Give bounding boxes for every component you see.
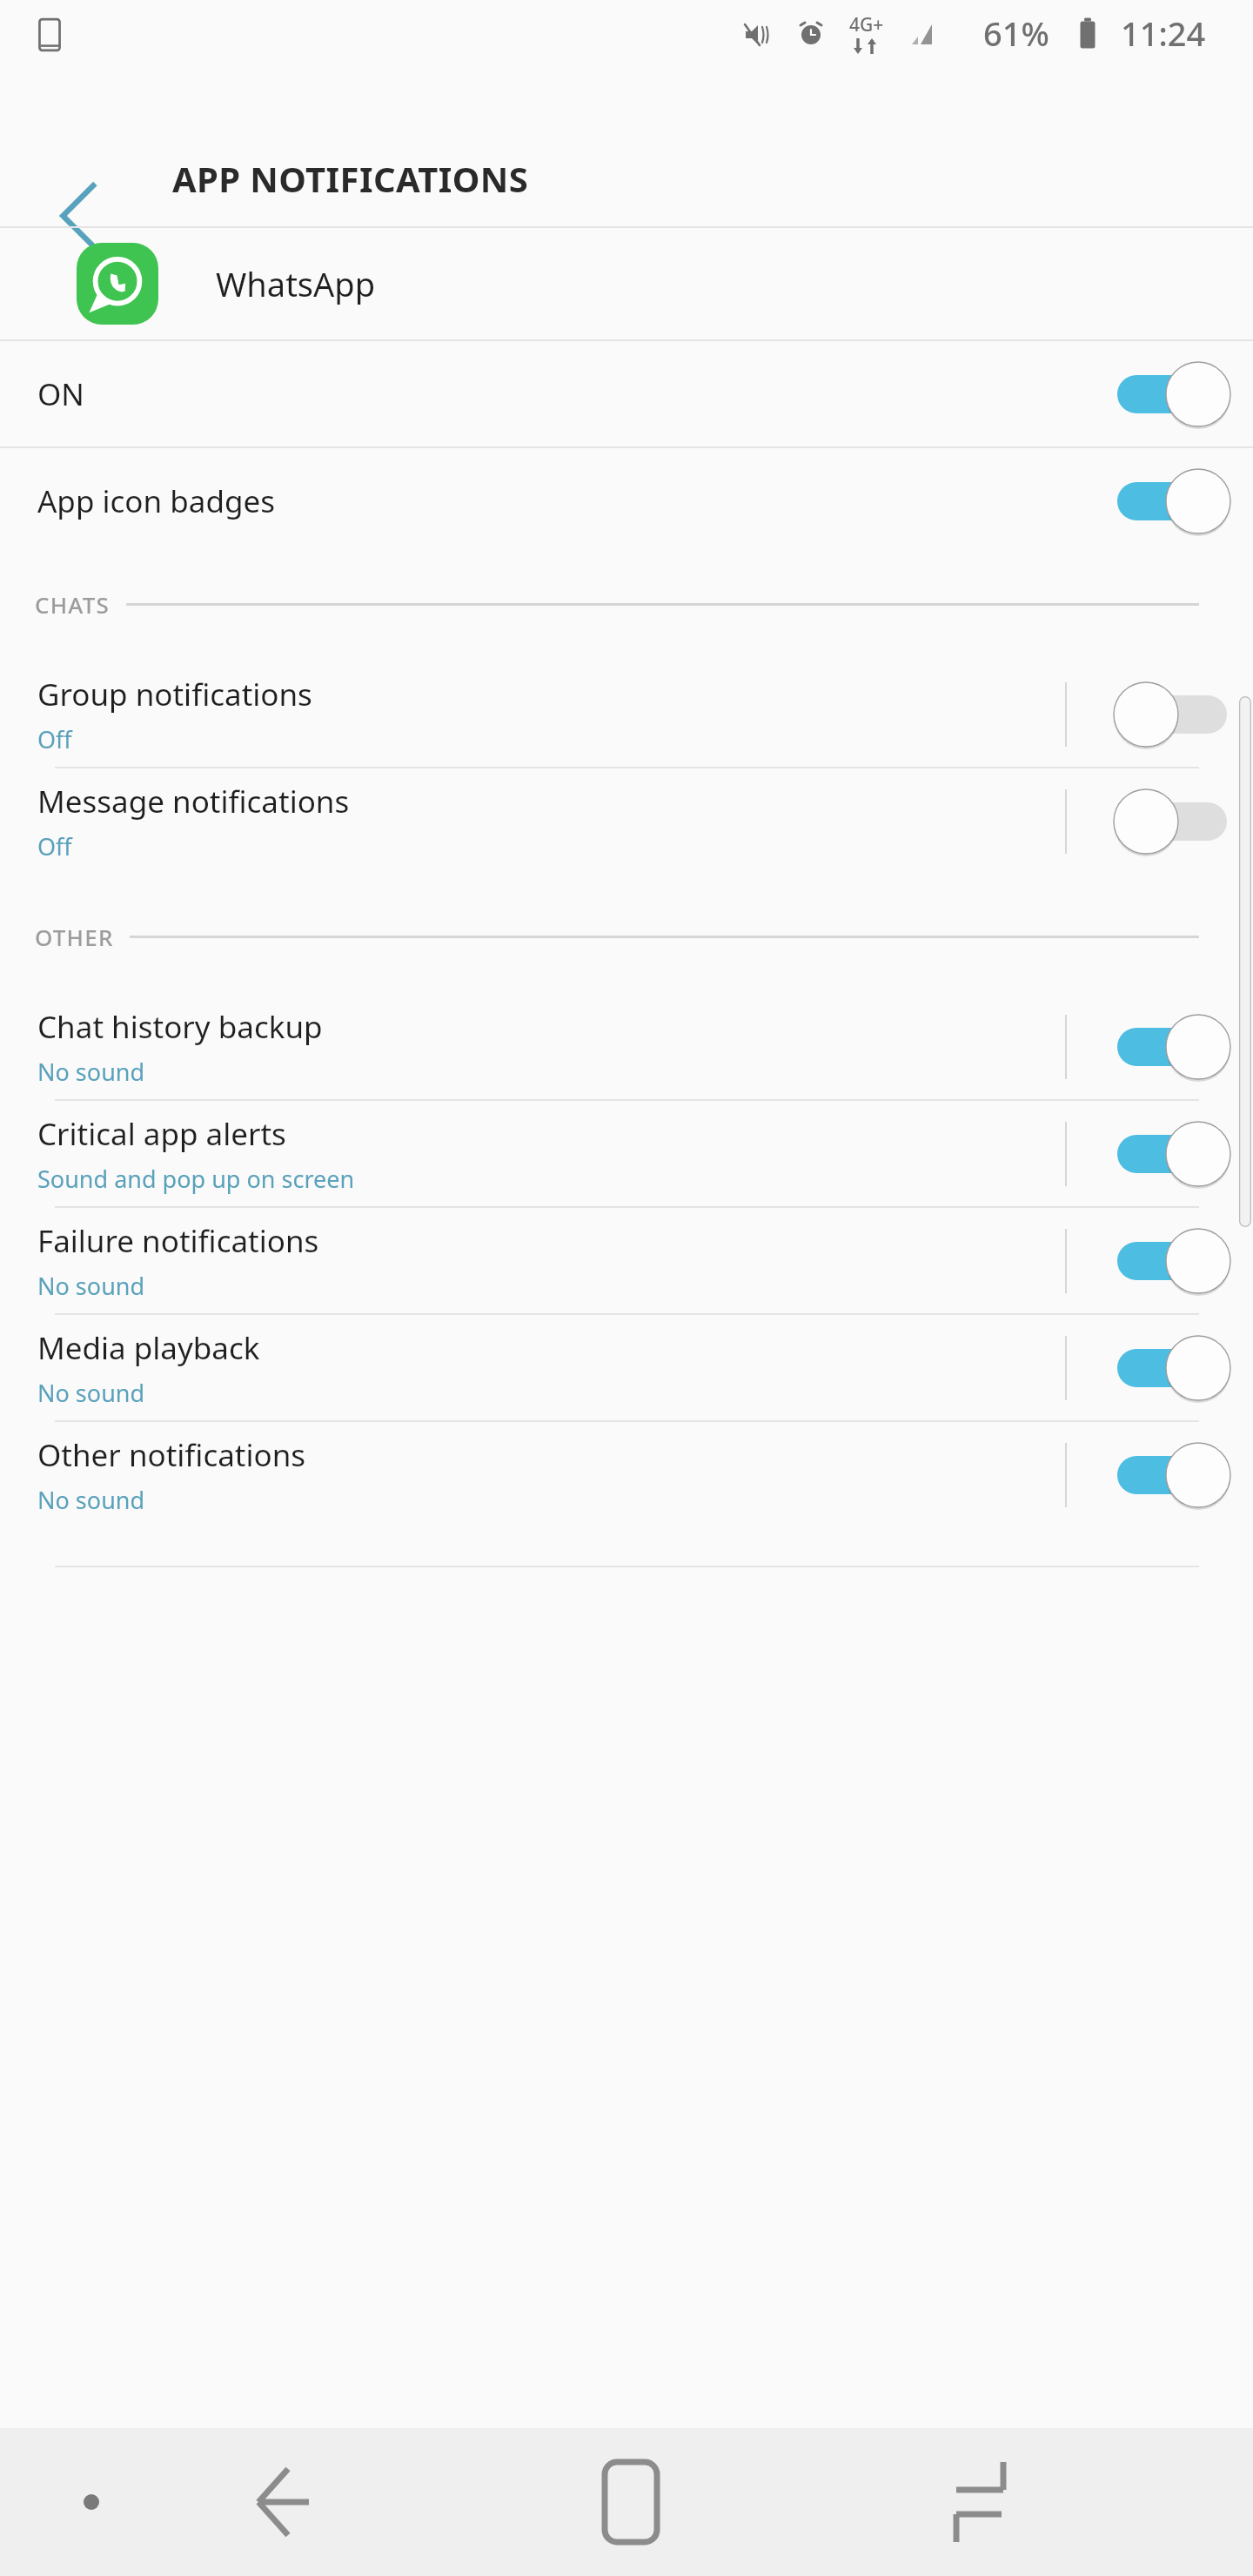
staticText: Other notifications [37,1434,306,1476]
button[interactable]: App icon badges [0,448,1253,553]
button[interactable]: Home [574,2428,687,2576]
button[interactable]: Other notifications [0,1422,1253,1527]
button[interactable]: Back [26,165,127,266]
button[interactable]: Recent apps [922,2428,1035,2576]
button[interactable]: Media playback [0,1315,1253,1420]
staticText: Failure notifications [37,1220,319,1262]
button[interactable]: Message notifications [0,768,1253,874]
staticText: ON [37,373,84,415]
button[interactable]: Back [226,2428,339,2576]
button[interactable]: Chat history backup [0,994,1253,1099]
staticText: No sound [37,1377,145,1409]
button[interactable]: Menu [52,2428,131,2576]
button[interactable]: Group notifications off [1107,675,1237,754]
button[interactable]: Other notifications on [1107,1436,1237,1514]
staticText: No sound [37,1484,145,1516]
button[interactable]: Failure notifications on [1107,1222,1237,1300]
staticText: Off [37,723,72,755]
staticText: No sound [37,1270,145,1302]
staticText: Chat history backup [37,1006,323,1048]
staticText: No sound [37,1056,145,1088]
button[interactable]: Media playback on [1107,1329,1237,1407]
staticText: 11:24 [1121,10,1206,56]
staticText: Message notifications [37,781,350,822]
button[interactable]: WhatsApp [0,228,1253,339]
staticText: OTHER [35,922,114,952]
button[interactable]: Group notifications [0,661,1253,767]
staticText: App icon badges [37,480,275,522]
button[interactable]: App icon badges on [1107,462,1237,540]
staticText: Media playback [37,1327,260,1369]
button[interactable]: Chat history backup on [1107,1008,1237,1086]
staticText: 61% [983,10,1049,56]
staticText: APP NOTIFICATIONS [172,155,529,202]
button[interactable]: Critical app alerts on [1107,1115,1237,1193]
staticText: Off [37,830,72,862]
staticText: WhatsApp [216,261,376,306]
button[interactable]: Failure notifications [0,1208,1253,1313]
staticText: Critical app alerts [37,1113,286,1155]
button[interactable]: Message notifications off [1107,782,1237,861]
staticText: 4G+ [849,12,884,37]
button[interactable]: ON on [1107,355,1237,433]
staticText: Group notifications [37,674,312,715]
button[interactable]: Critical app alerts [0,1101,1253,1206]
staticText: Sound and pop up on screen [37,1163,355,1195]
staticText: CHATS [35,589,111,620]
button[interactable]: ON [0,341,1253,446]
